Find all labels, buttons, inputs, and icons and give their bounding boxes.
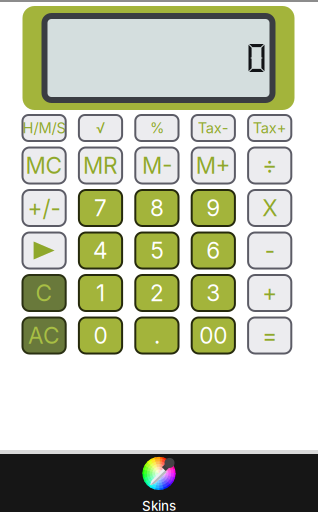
staticText: 8: [150, 194, 164, 222]
staticText: +/-: [28, 194, 61, 222]
staticText: .: [154, 322, 160, 349]
button[interactable]: 2: [135, 275, 178, 311]
button[interactable]: 9: [192, 190, 235, 226]
button[interactable]: H/M/S: [22, 115, 66, 141]
staticText: %: [150, 119, 164, 137]
staticText: M+: [196, 152, 231, 179]
staticText: -: [265, 237, 275, 264]
staticText: Tax-: [198, 119, 229, 137]
button[interactable]: MC: [22, 147, 66, 183]
staticText: AC: [28, 322, 60, 349]
staticText: 5: [150, 237, 163, 264]
button[interactable]: 00: [192, 317, 235, 353]
button[interactable]: Tax+: [248, 115, 291, 141]
button[interactable]: C: [22, 275, 66, 311]
staticText: 4: [93, 237, 108, 264]
button[interactable]: M+: [192, 147, 235, 183]
button[interactable]: M-: [135, 147, 178, 183]
staticText: 2: [150, 279, 164, 307]
button[interactable]: Tax-: [192, 115, 235, 141]
button[interactable]: ÷: [248, 147, 291, 183]
staticText: √: [96, 119, 105, 137]
button[interactable]: 4: [79, 232, 122, 268]
staticText: M-: [142, 152, 172, 179]
button[interactable]: 3: [192, 275, 235, 311]
staticText: X: [262, 194, 277, 222]
button[interactable]: =: [248, 317, 291, 353]
button[interactable]: 8: [135, 190, 178, 226]
staticText: MC: [26, 152, 63, 179]
button[interactable]: MR: [79, 147, 122, 183]
button[interactable]: X: [248, 190, 291, 226]
staticText: C: [36, 279, 53, 307]
staticText: 0: [93, 322, 107, 349]
button[interactable]: AC: [22, 317, 66, 353]
staticText: 6: [206, 237, 220, 264]
staticText: 00: [199, 322, 227, 349]
staticText: H/M/S: [23, 119, 66, 137]
button[interactable]: √: [79, 115, 122, 141]
button[interactable]: 7: [79, 190, 122, 226]
staticText: Skins: [142, 498, 176, 512]
staticText: =: [262, 322, 277, 349]
staticText: 7: [94, 194, 107, 222]
button[interactable]: .: [135, 317, 178, 353]
button[interactable]: -: [248, 232, 291, 268]
button[interactable]: Skins: [0, 454, 318, 512]
staticText: MR: [83, 152, 118, 179]
staticText: Tax+: [253, 119, 287, 137]
button[interactable]: 6: [192, 232, 235, 268]
button[interactable]: 1: [79, 275, 122, 311]
staticText: +: [262, 279, 277, 307]
staticText: 9: [206, 194, 220, 222]
staticText: 3: [206, 279, 220, 307]
button[interactable]: +: [248, 275, 291, 311]
staticText: ÷: [262, 152, 277, 179]
button[interactable]: %: [135, 115, 178, 141]
button[interactable]: Play: [22, 232, 66, 268]
button[interactable]: 5: [135, 232, 178, 268]
staticText: 1: [96, 279, 105, 307]
button[interactable]: 0: [79, 317, 122, 353]
button[interactable]: +/-: [22, 190, 66, 226]
